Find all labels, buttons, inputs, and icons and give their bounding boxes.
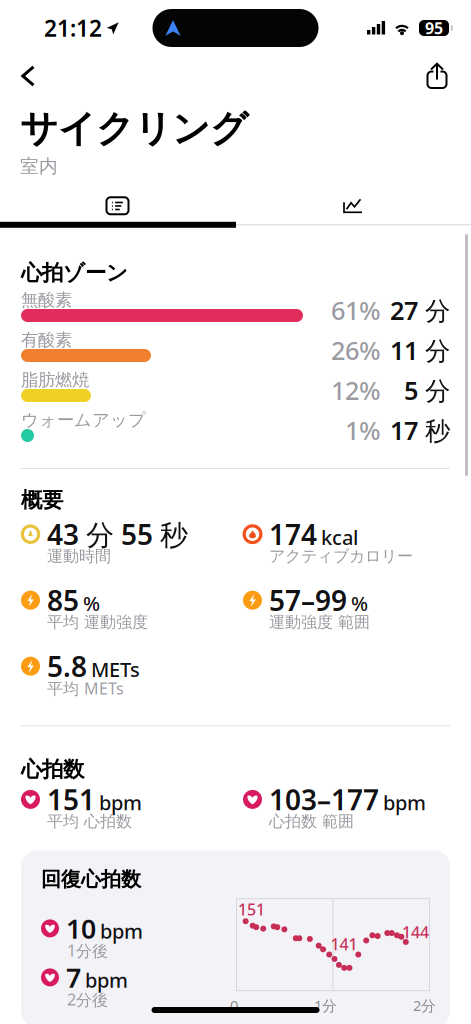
staticText: bpm [100, 918, 143, 944]
staticText: 1% [345, 413, 381, 447]
staticText: 27 分 [390, 293, 450, 327]
staticText: 2分後 [67, 989, 108, 1010]
staticText: 95 [425, 17, 443, 39]
staticText: 85 [47, 582, 79, 619]
staticText: bpm [99, 789, 142, 816]
staticText: 21:12 [44, 13, 102, 43]
staticText: 0 [230, 996, 238, 1015]
staticText: kcal [321, 524, 358, 551]
staticText: サイクリング [20, 106, 248, 152]
staticText: bpm [85, 967, 128, 993]
staticText: 144 [402, 921, 429, 943]
staticText: 151 [238, 899, 265, 920]
staticText: アクティブカロリー [269, 546, 413, 566]
staticText: bpm [383, 789, 426, 816]
staticText: 43 分 55 秒 [47, 516, 188, 553]
staticText: 17 秒 [390, 413, 450, 447]
staticText: 心拍数 範囲 [269, 812, 354, 831]
staticText: 運動強度 範囲 [269, 612, 370, 632]
staticText: 平均 METs [47, 678, 124, 699]
staticText: 平均 運動強度 [47, 612, 148, 632]
staticText: 無酸素 [21, 289, 72, 311]
staticText: 10 [66, 911, 96, 946]
staticText: 5.8 [47, 648, 87, 685]
staticText: 61% [331, 293, 381, 327]
staticText: ウォームアップ [21, 409, 146, 431]
staticText: 174 [269, 516, 317, 553]
staticText: 141 [330, 933, 357, 955]
button[interactable]: Share [415, 54, 459, 98]
button[interactable]: Details [0, 190, 235, 222]
staticText: 心拍ゾーン [21, 260, 128, 286]
staticText: 運動時間 [47, 546, 111, 566]
staticText: 1分 [314, 996, 337, 1015]
staticText: 7 [66, 960, 81, 995]
staticText: % [351, 590, 368, 617]
staticText: 室内 [20, 155, 58, 178]
button[interactable]: Charts [235, 190, 471, 222]
staticText: 5 分 [404, 373, 450, 407]
staticText: 11 分 [390, 333, 450, 367]
staticText: 26% [331, 333, 381, 367]
staticText: 概要 [21, 487, 63, 513]
staticText: 心拍数 [21, 756, 84, 782]
staticText: % [83, 590, 100, 617]
staticText: 103–177 [269, 781, 379, 818]
staticText: 脂肪燃焼 [21, 369, 89, 391]
button[interactable]: Back [6, 54, 50, 98]
staticText: 平均 心拍数 [47, 812, 132, 831]
staticText: 12% [331, 373, 381, 407]
staticText: 回復心拍数 [41, 867, 141, 892]
staticText: 1分後 [67, 940, 108, 961]
staticText: 2分 [413, 996, 436, 1015]
staticText: 151 [47, 781, 95, 818]
staticText: 57–99 [269, 582, 347, 619]
staticText: METs [91, 656, 140, 683]
staticText: 有酸素 [21, 329, 72, 351]
